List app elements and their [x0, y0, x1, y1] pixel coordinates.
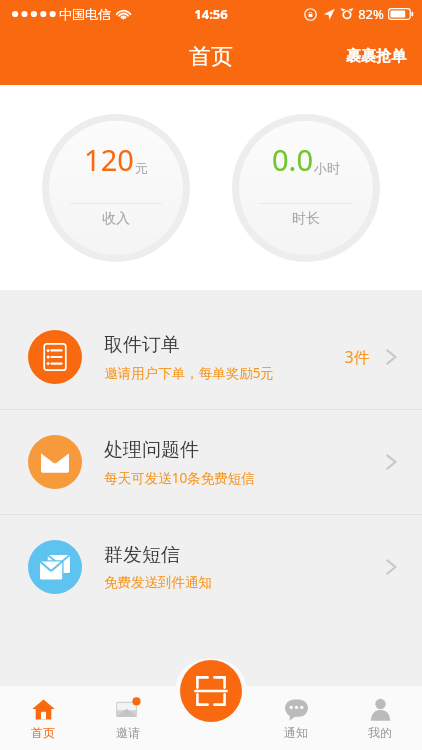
- staticText: 取件订单: [104, 333, 180, 357]
- staticText: 收入: [102, 210, 130, 228]
- staticText: 0.0: [272, 140, 313, 179]
- button[interactable]: Bulk SMS: [0, 515, 422, 619]
- staticText: 免费发送到件通知: [104, 574, 212, 591]
- staticText: 每天可发送10条免费短信: [104, 469, 255, 487]
- staticText: 中国电信: [59, 6, 111, 22]
- staticText: 120: [84, 140, 134, 179]
- staticText: 小时: [314, 160, 340, 176]
- button[interactable]: Scan: [180, 660, 242, 722]
- staticText: 元: [135, 160, 148, 176]
- staticText: 通知: [284, 725, 308, 740]
- other: Messages: [41, 448, 69, 476]
- button[interactable]: 0.0: [232, 114, 380, 262]
- button[interactable]: 裹裹抢单: [330, 37, 422, 76]
- staticText: 82%: [358, 5, 384, 23]
- button[interactable]: 邀请: [85, 686, 170, 750]
- staticText: 3件: [344, 346, 370, 368]
- staticText: 我的: [368, 725, 392, 740]
- staticText: 首页: [31, 725, 55, 740]
- staticText: 裹裹抢单: [346, 47, 406, 66]
- staticText: 邀请用户下单，每单奖励5元: [104, 364, 274, 382]
- button[interactable]: Orders: [0, 305, 422, 409]
- button[interactable]: Messages: [0, 410, 422, 514]
- other: Bulk SMS: [40, 552, 70, 582]
- staticText: 首页: [189, 43, 233, 71]
- staticText: 时长: [292, 210, 320, 228]
- button[interactable]: 我的: [338, 686, 422, 750]
- button[interactable]: 通知: [254, 686, 338, 750]
- staticText: 处理问题件: [104, 438, 199, 462]
- button[interactable]: 首页: [0, 686, 85, 750]
- staticText: 14:56: [194, 5, 228, 23]
- staticText: 邀请: [116, 725, 140, 740]
- button[interactable]: 120: [42, 114, 190, 262]
- staticText: 群发短信: [104, 543, 180, 567]
- other: Orders: [40, 342, 70, 372]
